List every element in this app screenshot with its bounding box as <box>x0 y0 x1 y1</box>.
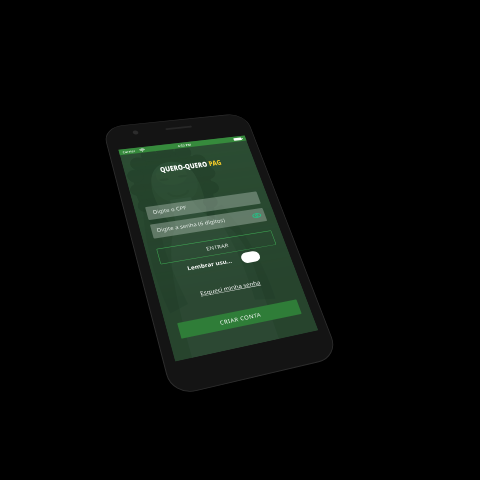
button[interactable]: Quero-Quero Pag login screen <box>0 0 480 480</box>
